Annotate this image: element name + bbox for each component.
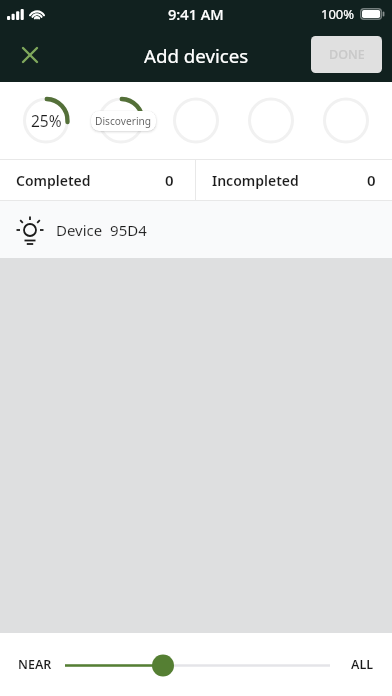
staticText: Device 95D4 (56, 220, 147, 240)
staticText: 9:41 AM (168, 4, 224, 24)
staticText: DONE (329, 46, 365, 63)
button[interactable]: Close (12, 37, 48, 73)
button[interactable]: Range slider (0, 633, 392, 696)
button[interactable]: Incompleted (196, 160, 392, 200)
staticText: 25% (31, 110, 62, 131)
staticText: ALL (351, 656, 374, 673)
button[interactable]: DONE (311, 36, 382, 73)
button[interactable]: Discovering (91, 111, 156, 131)
staticText: 0 (165, 170, 174, 190)
button[interactable]: 25% (24, 98, 68, 142)
staticText: Discovering (95, 114, 152, 128)
staticText: Incompleted (212, 171, 299, 190)
staticText: 100% (321, 5, 355, 23)
staticText: Completed (16, 171, 91, 190)
staticText: Add devices (144, 43, 249, 68)
button[interactable]: Completed (0, 160, 195, 200)
staticText: 0 (367, 170, 376, 190)
button[interactable]: Device 95D4 (0, 201, 392, 258)
staticText: NEAR (18, 656, 52, 673)
